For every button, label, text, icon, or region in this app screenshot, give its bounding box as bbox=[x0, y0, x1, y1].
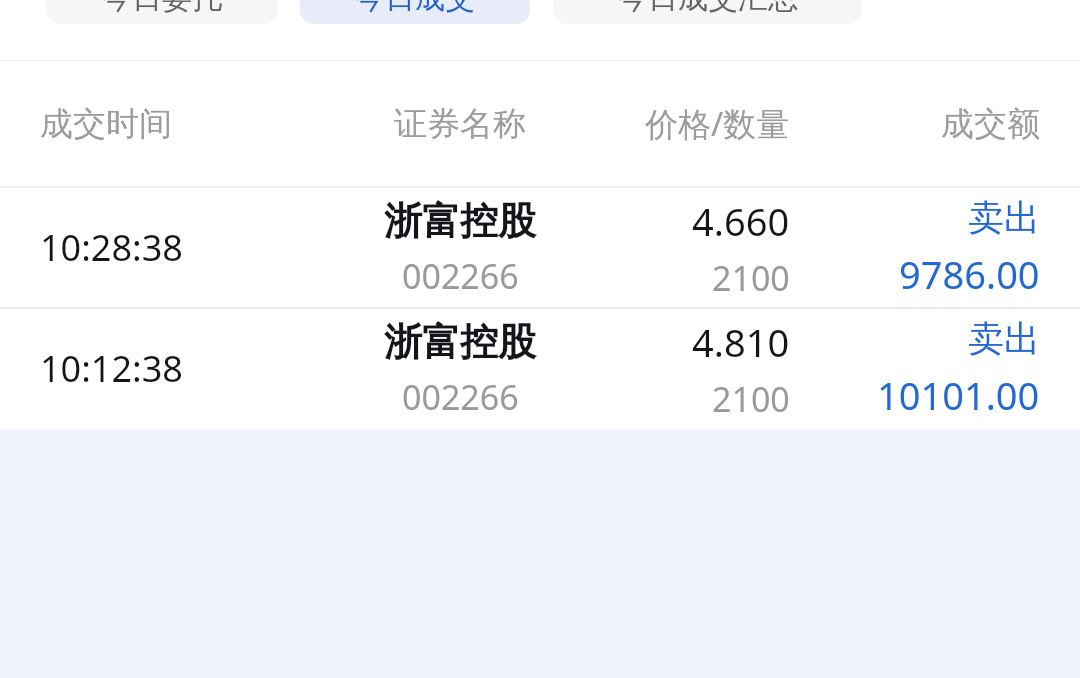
staticText: 卖出 bbox=[968, 195, 1040, 240]
button[interactable]: 今日成交汇总 bbox=[553, 0, 862, 24]
button[interactable]: 今日委托 bbox=[46, 0, 278, 24]
button[interactable]: 今日成交 bbox=[300, 0, 530, 24]
staticText: 成交时间 bbox=[40, 103, 172, 145]
staticText: 成交额 bbox=[941, 103, 1040, 145]
staticText: 002266 bbox=[402, 374, 519, 420]
staticText: 4.660 bbox=[692, 195, 790, 247]
staticText: 今日成交 bbox=[355, 0, 475, 17]
staticText: 2100 bbox=[712, 255, 790, 301]
staticText: 浙富控股 bbox=[384, 197, 536, 245]
staticText: 今日成交汇总 bbox=[618, 0, 798, 17]
staticText: 浙富控股 bbox=[384, 318, 536, 366]
staticText: 10:28:38 bbox=[40, 223, 183, 272]
staticText: 2100 bbox=[712, 376, 790, 422]
button[interactable]: 10:28:38 bbox=[0, 188, 1080, 307]
staticText: 9786.00 bbox=[899, 248, 1040, 300]
staticText: 10:12:38 bbox=[40, 344, 183, 393]
staticText: 价格/数量 bbox=[645, 101, 790, 146]
button[interactable]: 10:12:38 bbox=[0, 309, 1080, 428]
staticText: 10101.00 bbox=[877, 369, 1040, 421]
staticText: 今日委托 bbox=[102, 0, 222, 17]
staticText: 002266 bbox=[402, 253, 519, 299]
staticText: 证券名称 bbox=[394, 103, 526, 145]
staticText: 4.810 bbox=[692, 316, 790, 368]
staticText: 卖出 bbox=[968, 316, 1040, 361]
